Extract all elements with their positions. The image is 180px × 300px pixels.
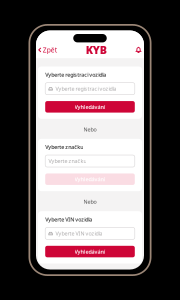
- button[interactable]: Zpět: [36, 45, 57, 55]
- staticText: Vyberte značku: [45, 143, 83, 151]
- staticText: KYB: [86, 43, 107, 57]
- staticText: Vyhledávání: [74, 248, 105, 255]
- staticText: Zpět: [43, 45, 57, 54]
- staticText: Vyberte registraci vozidla: [45, 71, 106, 78]
- button[interactable]: Notifications: [136, 45, 144, 55]
- staticText: Nebo: [83, 126, 96, 133]
- staticText: Vyberte VIN vozidla: [45, 216, 92, 223]
- button[interactable]: Vyhledávání: [45, 173, 135, 185]
- button[interactable]: Vyhledávání: [45, 101, 135, 113]
- staticText: Vyberte značku: [48, 157, 86, 165]
- staticText: Vyberte registraci vozidla: [55, 85, 116, 92]
- staticText: Vyberte VIN vozidla: [55, 230, 102, 237]
- button[interactable]: Vyhledávání: [45, 246, 135, 257]
- staticText: Vyhledávání: [74, 176, 105, 183]
- staticText: Nebo: [83, 198, 96, 205]
- staticText: Vyhledávání: [74, 103, 105, 110]
